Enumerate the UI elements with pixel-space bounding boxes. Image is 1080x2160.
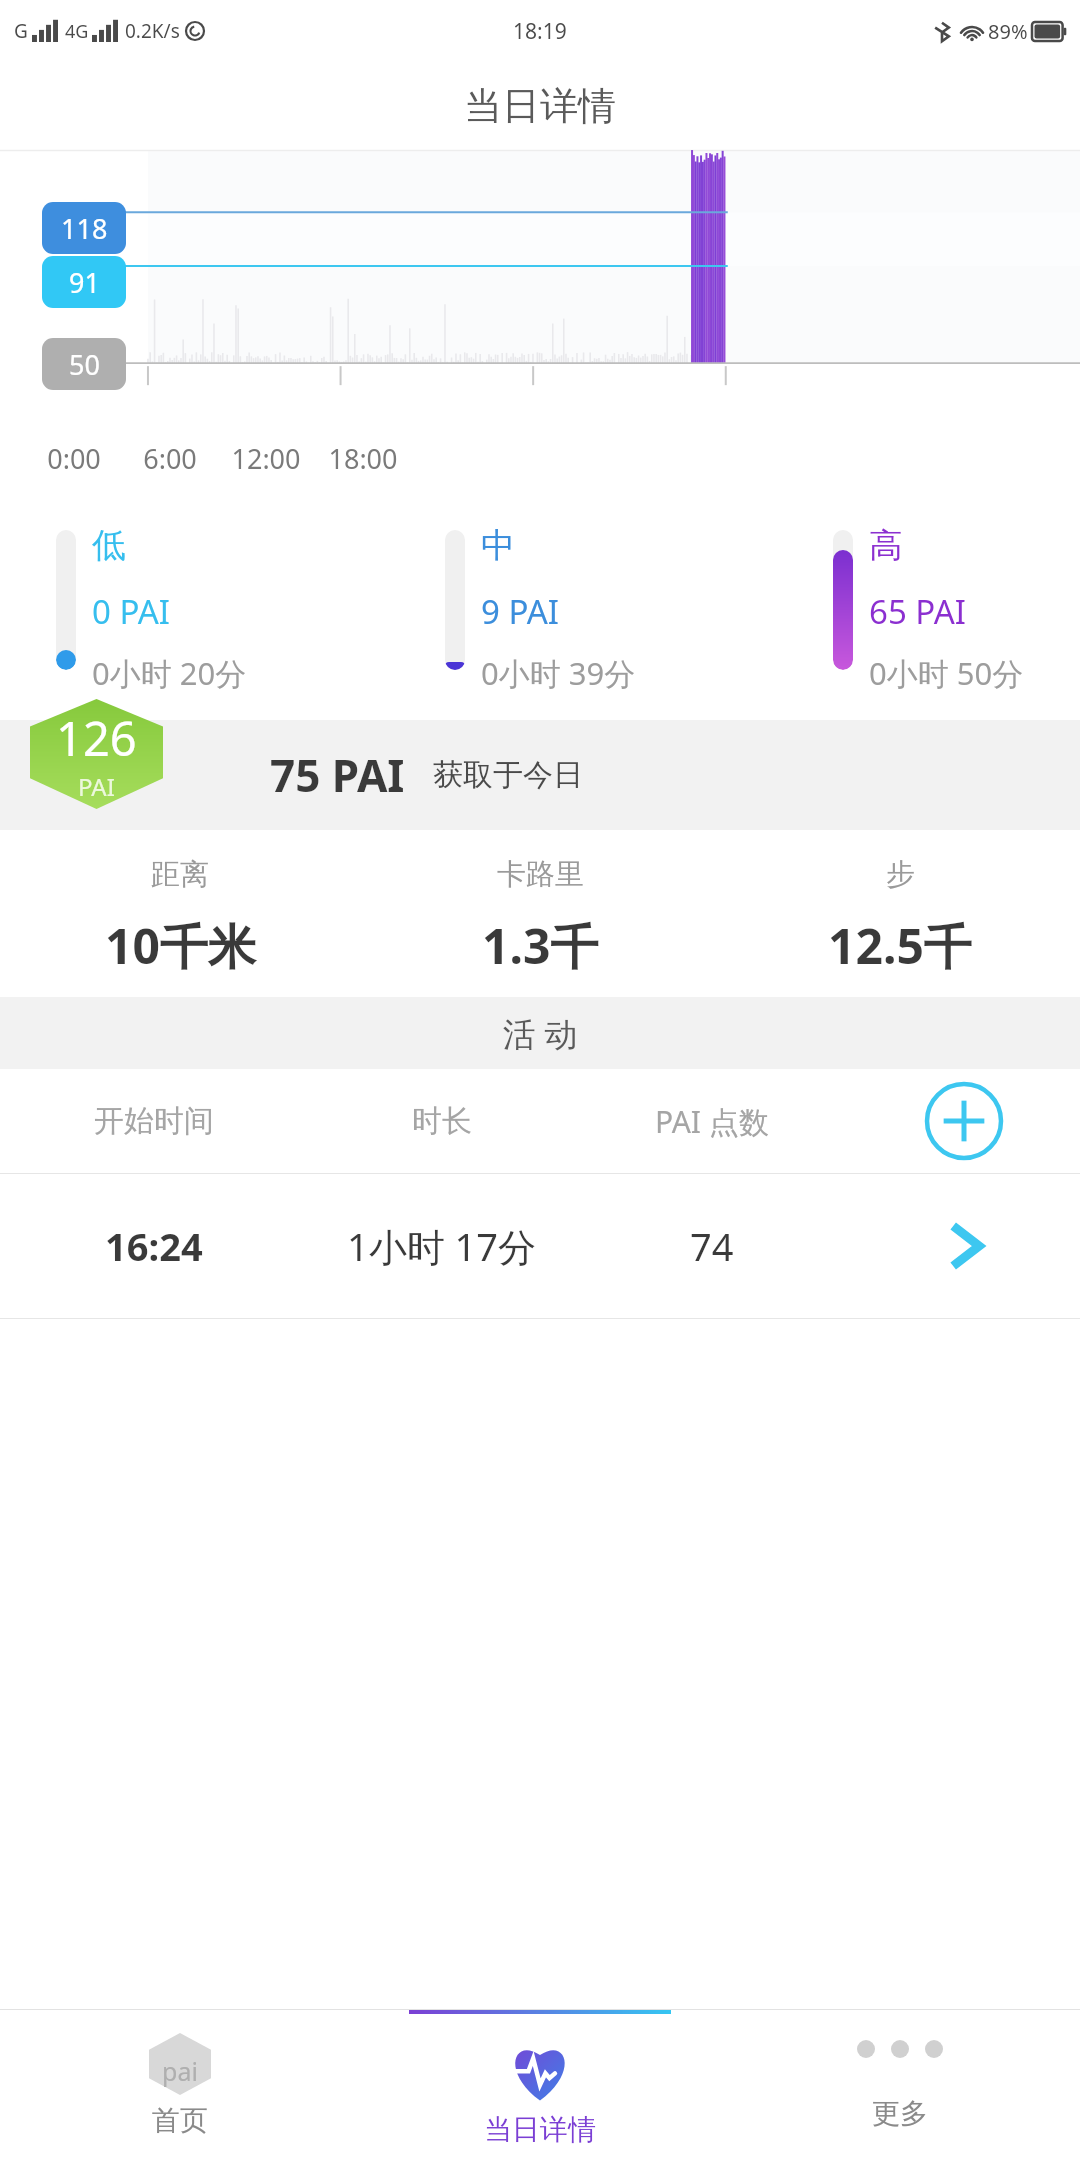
staticText: 50 [69, 346, 100, 383]
staticText: 步 [886, 856, 915, 893]
button[interactable]: 添加活动 [922, 1079, 1006, 1163]
staticText: 118 [61, 210, 108, 247]
staticText: 74 [690, 1220, 734, 1272]
staticText: 1.3千 [482, 913, 599, 979]
staticText: 0:00 [34, 440, 114, 477]
staticText: 0小时 39分 [481, 652, 636, 694]
staticText: 89% [988, 18, 1028, 45]
staticText: 6:00 [130, 440, 210, 477]
staticText: 4G [65, 19, 89, 44]
staticText: 10千米 [105, 913, 256, 979]
staticText: 首页 [152, 2103, 208, 2138]
staticText: 更多 [872, 2096, 928, 2131]
staticText: 65 PAI [869, 589, 966, 634]
staticText: 当日详情 [464, 82, 616, 130]
staticText: 18:19 [513, 17, 567, 46]
staticText: 开始时间 [94, 1102, 214, 1140]
staticText: 活 动 [503, 1011, 578, 1056]
staticText: PAI [78, 770, 115, 803]
staticText: 获取于今日 [433, 756, 583, 794]
staticText: 0小时 50分 [869, 652, 1024, 694]
button[interactable]: 当日详情 [360, 2010, 720, 2160]
staticText: 1小时 17分 [347, 1220, 537, 1272]
staticText: 18:00 [323, 440, 403, 477]
button[interactable]: 16:24 [0, 1174, 1080, 1319]
staticText: 当日详情 [484, 2112, 596, 2147]
button[interactable]: 更多 [720, 2010, 1080, 2160]
staticText: 91 [69, 264, 100, 301]
staticText: PAI 点数 [655, 1101, 769, 1142]
staticText: 126 [56, 706, 137, 770]
staticText: 时长 [412, 1102, 472, 1140]
staticText: 距离 [151, 856, 209, 893]
staticText: 低 [92, 524, 126, 567]
staticText: G [14, 18, 28, 44]
staticText: pai [162, 2054, 198, 2088]
staticText: 0.2K/s [125, 18, 180, 44]
staticText: 75 PAI [270, 745, 405, 805]
staticText: 9 PAI [481, 589, 560, 634]
staticText: 0 PAI [92, 589, 171, 634]
staticText: 高 [869, 524, 903, 567]
staticText: 中 [481, 524, 515, 567]
staticText: 12:00 [226, 440, 306, 477]
button[interactable]: 首页 [0, 2010, 360, 2160]
staticText: 16:24 [105, 1220, 203, 1272]
staticText: 12.5千 [828, 913, 972, 979]
staticText: 0小时 20分 [92, 652, 247, 694]
staticText: 卡路里 [497, 856, 584, 893]
